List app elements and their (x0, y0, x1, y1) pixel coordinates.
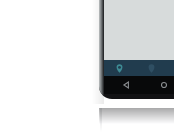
button[interactable]: Home (156, 77, 172, 93)
button[interactable]: Groups (135, 60, 167, 76)
button[interactable]: Back (118, 77, 134, 93)
button[interactable]: Contacts (104, 60, 135, 76)
